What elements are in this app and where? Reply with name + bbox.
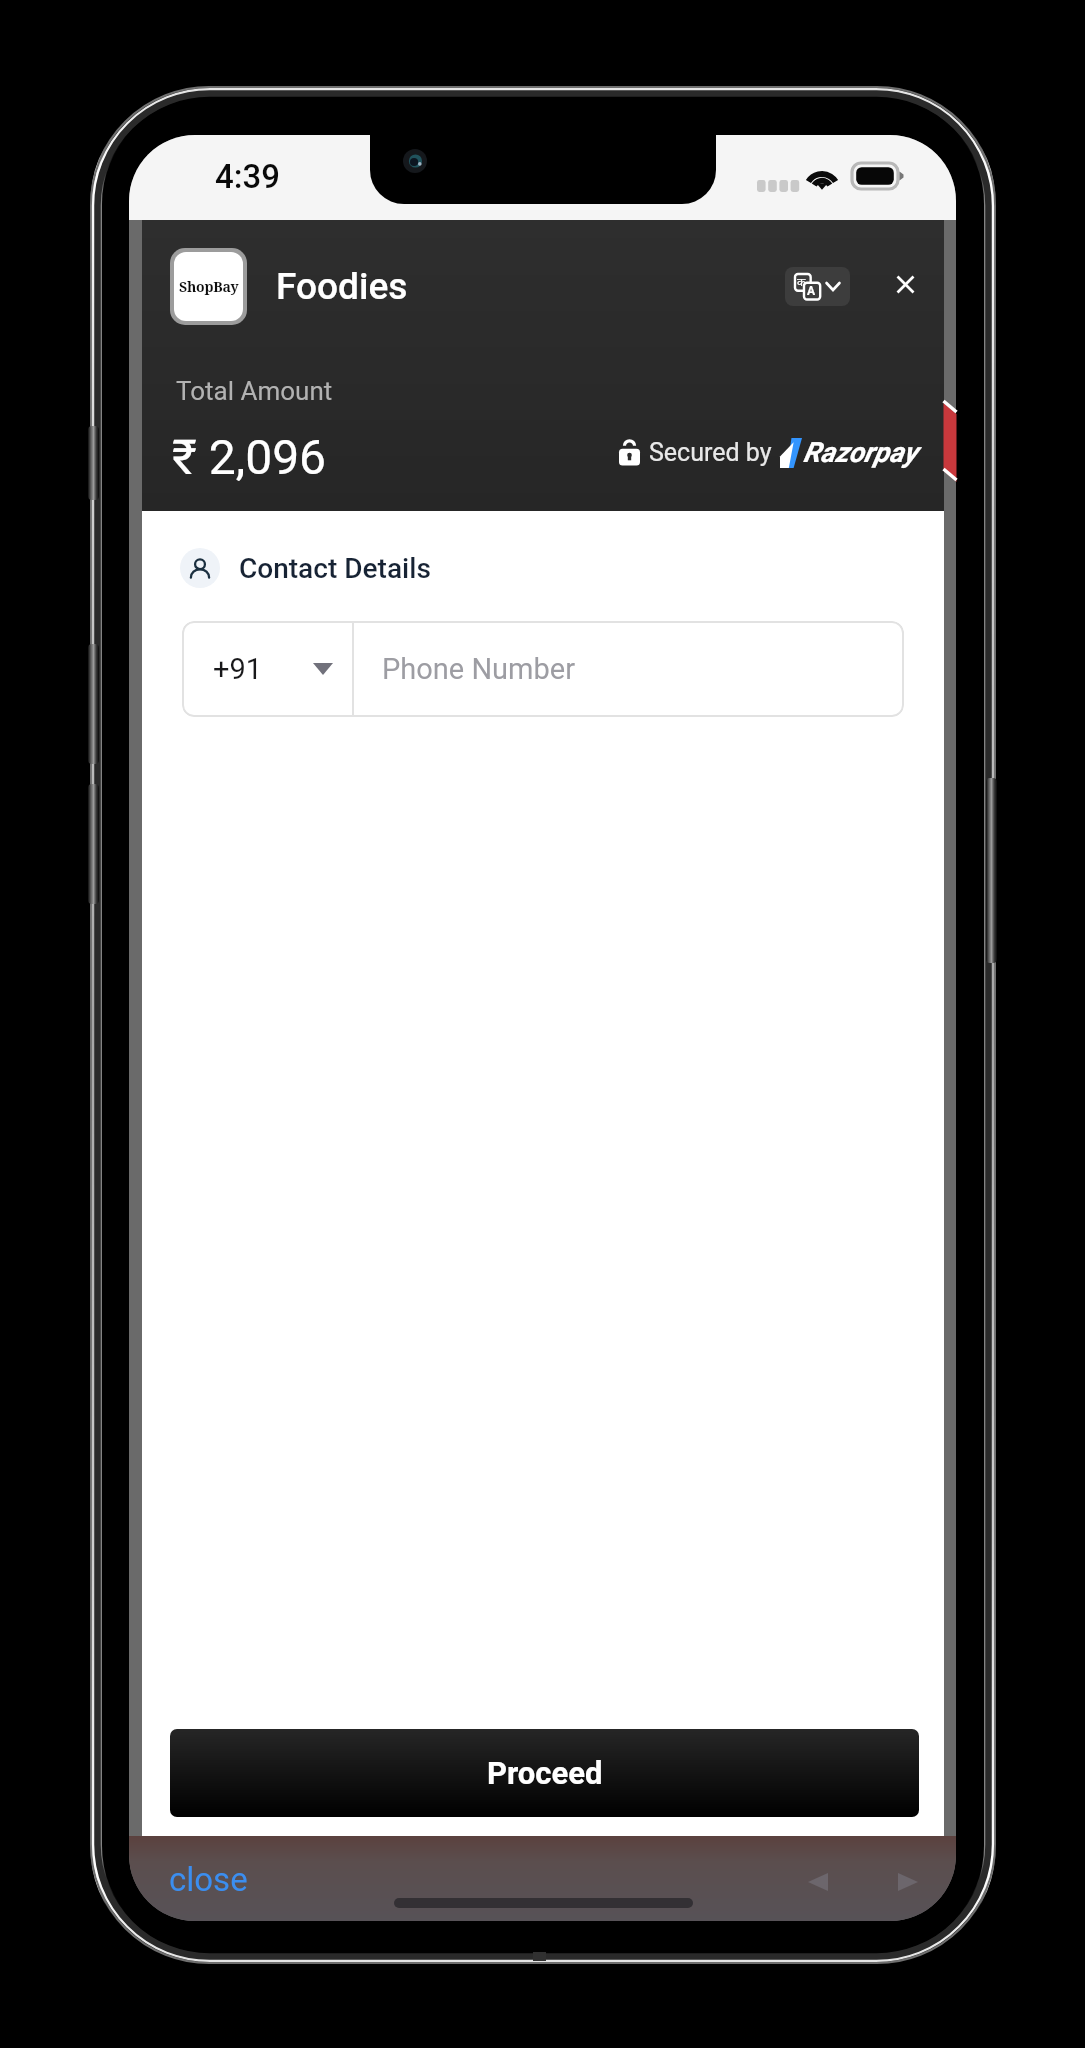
staticText: ₹ 2,096 [172, 429, 327, 485]
staticText: Phone Number [382, 652, 575, 686]
staticText: Proceed [487, 1755, 603, 1791]
other: Forward [898, 1872, 918, 1892]
staticText: क [797, 274, 806, 289]
staticText: Secured by [649, 438, 772, 467]
staticText: Razorpay [803, 436, 918, 469]
staticText: Total Amount [176, 376, 333, 406]
other: Back [808, 1872, 828, 1892]
staticText: ShopBay [179, 277, 239, 296]
button[interactable]: Close [871, 250, 939, 318]
button[interactable]: Proceed [170, 1729, 919, 1817]
staticText: Foodies [276, 265, 408, 308]
button[interactable]: Change language [785, 267, 850, 306]
staticText: +91 [213, 652, 263, 686]
staticText: 4:39 [215, 157, 281, 196]
button[interactable]: Phone Number [354, 621, 904, 717]
staticText: Contact Details [239, 552, 431, 585]
button[interactable]: close [169, 1860, 248, 1899]
button[interactable]: +91 [182, 621, 352, 717]
staticText: A [807, 284, 816, 298]
